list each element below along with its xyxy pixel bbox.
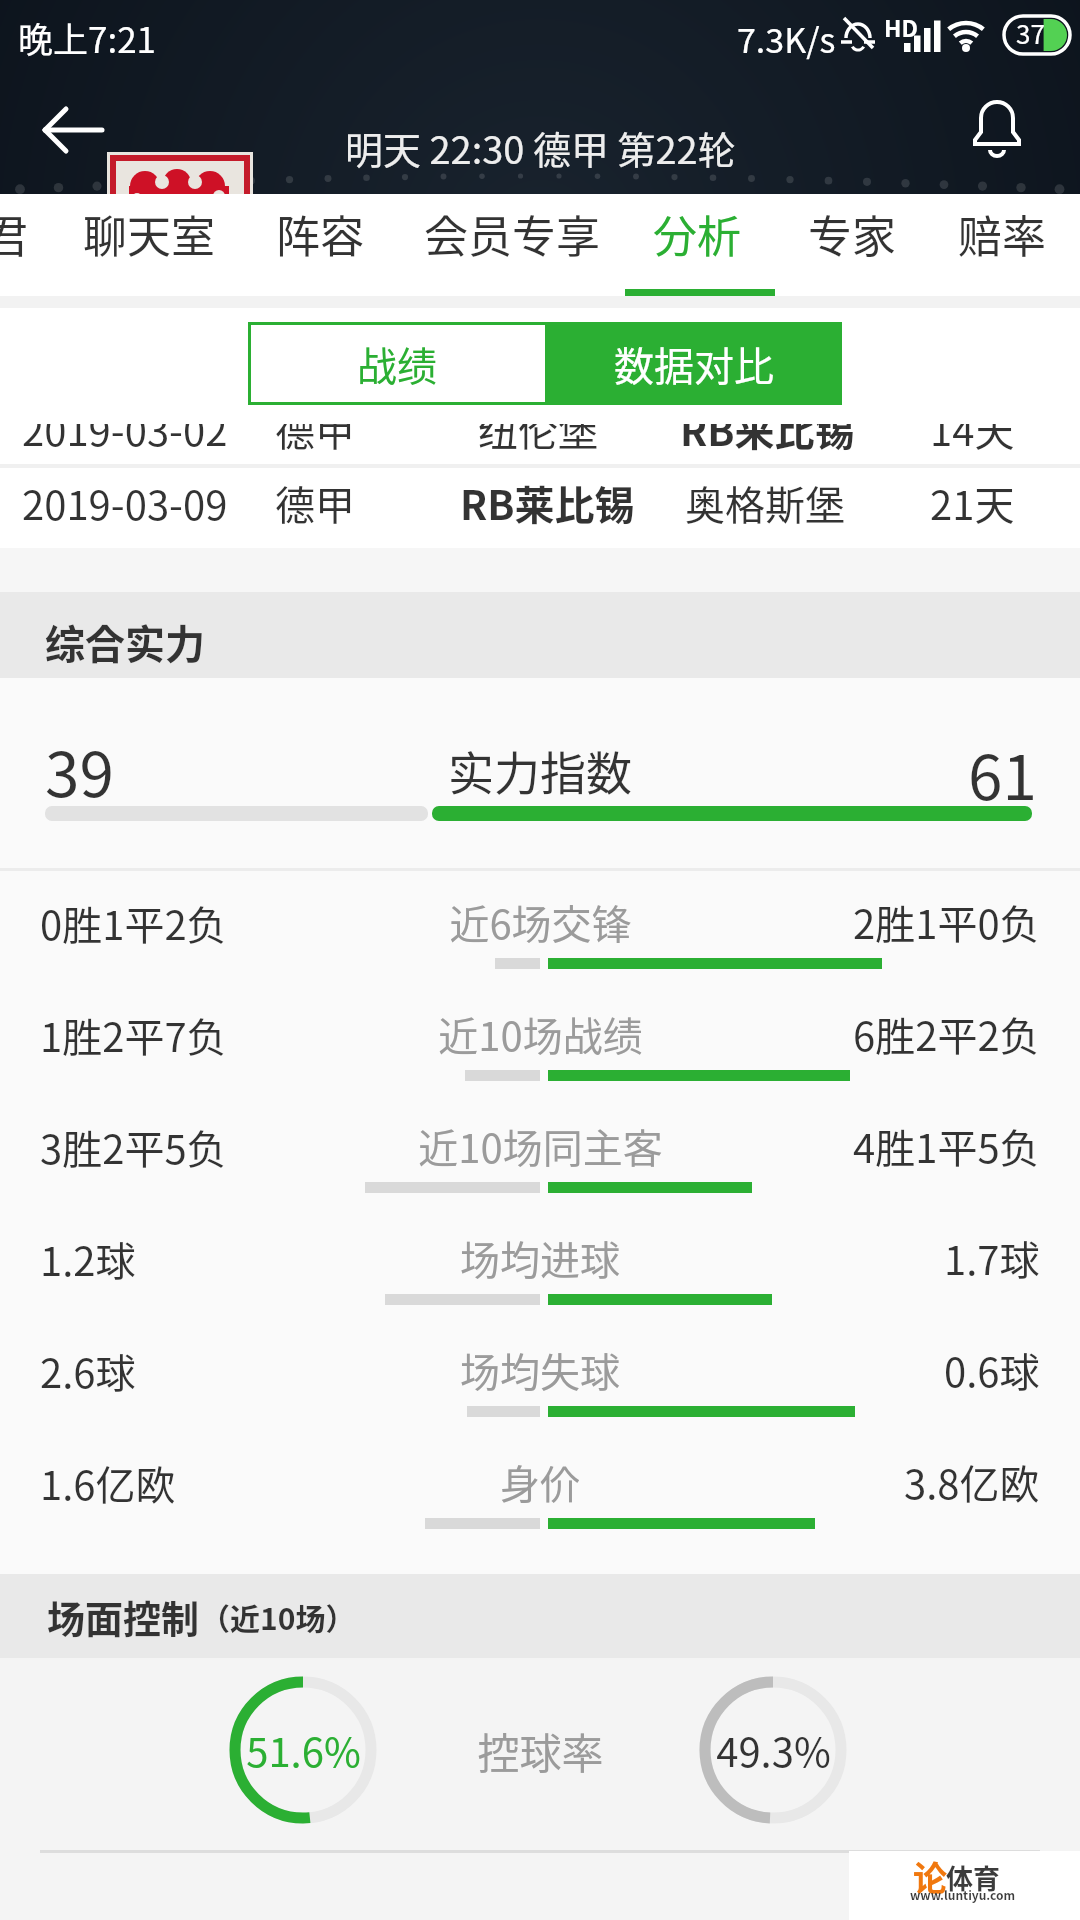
staticText: 纽伦堡 bbox=[478, 400, 598, 458]
staticText: 数据对比 bbox=[614, 335, 774, 393]
staticText: 论 bbox=[913, 1852, 947, 1901]
staticText: 51.6% bbox=[246, 1721, 361, 1779]
staticText: 61 bbox=[968, 728, 1037, 808]
button[interactable]: 阵容 bbox=[0, 194, 88, 258]
staticText: 分析 bbox=[653, 202, 741, 266]
staticText: 君 bbox=[0, 202, 28, 266]
staticText: 专家 bbox=[808, 202, 896, 266]
staticText: 3胜2平5负 bbox=[40, 1118, 227, 1176]
staticText: 体育 bbox=[946, 1858, 1000, 1897]
button[interactable] bbox=[966, 100, 1030, 164]
button[interactable]: 分析 bbox=[0, 194, 88, 258]
staticText: 实力指数 bbox=[448, 737, 632, 804]
staticText: （近10场） bbox=[200, 1595, 356, 1638]
button[interactable]: 战绩 bbox=[248, 322, 545, 405]
staticText: 场均进球 bbox=[460, 1229, 620, 1287]
staticText: 会员专享 bbox=[424, 202, 600, 266]
staticText: www.luntiyu.com bbox=[910, 1886, 1016, 1903]
staticText: 明天 22:30 德甲 第22轮 bbox=[345, 120, 736, 175]
staticText: 39 bbox=[45, 725, 114, 815]
staticText: 1.2球 bbox=[40, 1230, 136, 1288]
staticText: 近10场战绩 bbox=[438, 1005, 643, 1063]
button[interactable]: 君 bbox=[0, 194, 44, 258]
button[interactable]: 会员专享 bbox=[0, 194, 176, 258]
staticText: 1胜2平7负 bbox=[40, 1006, 227, 1064]
staticText: 49.3% bbox=[716, 1721, 831, 1779]
staticText: 控球率 bbox=[477, 1720, 604, 1781]
staticText: 综合实力 bbox=[45, 613, 205, 671]
staticText: 37 bbox=[1016, 14, 1045, 52]
staticText: 聊天室 bbox=[83, 202, 215, 266]
staticText: 2019-03-02 bbox=[22, 400, 228, 458]
staticText: 阵容 bbox=[276, 202, 364, 266]
staticText: 21天 bbox=[930, 474, 1015, 532]
button[interactable]: 聊天室 bbox=[0, 194, 132, 258]
staticText: 晚上7:21 bbox=[18, 12, 157, 63]
staticText: RB莱比锡 bbox=[460, 474, 635, 532]
staticText: 战绩 bbox=[357, 335, 437, 393]
staticText: RB来比锡 bbox=[680, 400, 855, 458]
staticText: 近6场交锋 bbox=[449, 893, 632, 951]
staticText: 0.6球 bbox=[944, 1341, 1040, 1399]
staticText: 0胜1平2负 bbox=[40, 894, 227, 952]
staticText: 1.6亿欧 bbox=[40, 1454, 176, 1512]
staticText: 2019-03-09 bbox=[22, 474, 228, 532]
staticText: 14天 bbox=[930, 400, 1015, 458]
staticText: 德甲 bbox=[275, 400, 355, 458]
staticText: 3.8亿欧 bbox=[904, 1453, 1040, 1511]
staticText: 2胜1平0负 bbox=[853, 893, 1040, 951]
staticText: 2.6球 bbox=[40, 1342, 136, 1400]
button[interactable]: 数据对比 bbox=[545, 322, 842, 405]
staticText: 近10场同主客 bbox=[418, 1117, 663, 1175]
staticText: 身价 bbox=[500, 1453, 580, 1511]
staticText: 场均失球 bbox=[460, 1341, 620, 1399]
staticText: 6胜2平2负 bbox=[853, 1005, 1040, 1063]
button[interactable]: 赔率 bbox=[0, 194, 88, 258]
staticText: 德甲 bbox=[275, 474, 355, 532]
staticText: 7.3K/s bbox=[737, 14, 836, 63]
button[interactable] bbox=[849, 1851, 1080, 1920]
button[interactable]: 专家 bbox=[0, 194, 88, 258]
staticText: 4胜1平5负 bbox=[853, 1117, 1040, 1175]
staticText: 赔率 bbox=[958, 202, 1046, 266]
staticText: 1.7球 bbox=[944, 1229, 1040, 1287]
staticText: HD bbox=[884, 10, 918, 43]
staticText: 奥格斯堡 bbox=[685, 474, 845, 532]
staticText: 场面控制 bbox=[47, 1589, 200, 1644]
